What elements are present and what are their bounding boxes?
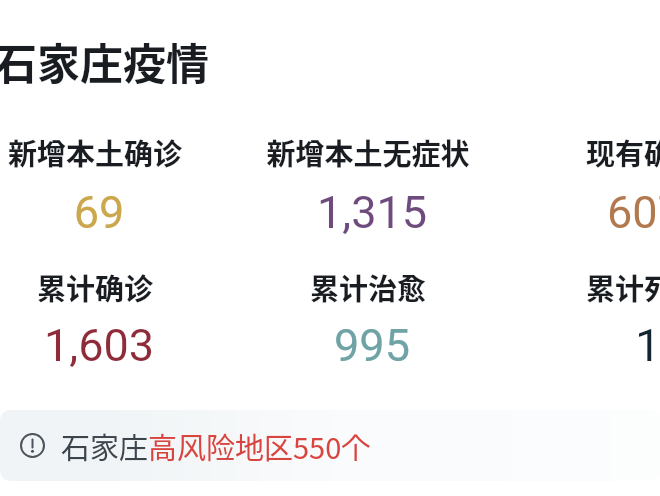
- staticText: 新增本土无症状: [231, 131, 505, 173]
- staticText: 石家庄高风险地区550个: [61, 425, 371, 467]
- button[interactable]: 现有确诊: [507, 116, 660, 234]
- button[interactable]: 累计死亡: [507, 251, 660, 367]
- staticText: 1: [511, 319, 660, 372]
- staticText: 累计死亡: [507, 266, 660, 308]
- staticText: 607: [508, 186, 660, 239]
- staticText: 69: [0, 186, 236, 239]
- button[interactable]: Information: [0, 410, 660, 481]
- staticText: 石家庄疫情: [0, 30, 209, 92]
- staticText: 现有确诊: [507, 131, 660, 173]
- other: Information: [20, 433, 45, 458]
- button[interactable]: 累计确诊: [0, 251, 232, 367]
- button[interactable]: 累计治愈: [231, 251, 505, 367]
- staticText: 累计确诊: [0, 266, 232, 308]
- staticText: 1,603: [0, 319, 236, 372]
- button[interactable]: 新增本土无症状: [231, 116, 505, 234]
- button[interactable]: 石家庄疫情: [0, 30, 209, 92]
- staticText: 新增本土确诊: [0, 131, 232, 173]
- staticText: 1,315: [235, 186, 509, 239]
- button[interactable]: 新增本土确诊: [0, 116, 232, 234]
- staticText: 995: [235, 319, 509, 372]
- staticText: 累计治愈: [231, 266, 505, 308]
